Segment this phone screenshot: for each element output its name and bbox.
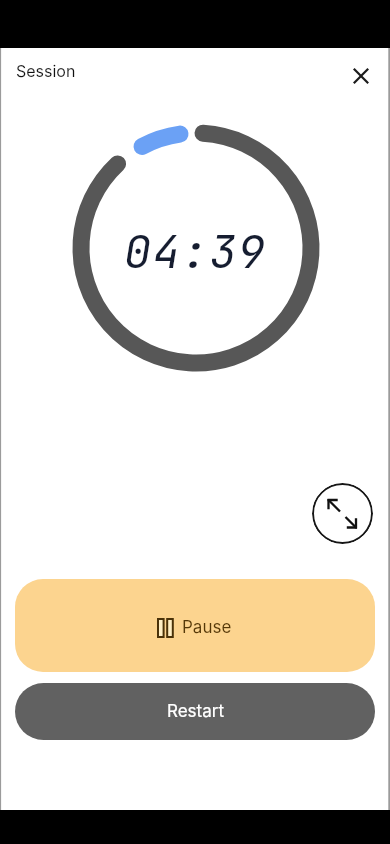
staticText: 04:39 bbox=[124, 222, 267, 281]
button[interactable]: Pause bbox=[15, 579, 375, 672]
button[interactable] bbox=[339, 54, 383, 98]
staticText: Restart bbox=[167, 701, 224, 722]
staticText: Pause bbox=[182, 617, 232, 638]
button[interactable]: Restart bbox=[15, 683, 375, 740]
button[interactable] bbox=[312, 483, 373, 544]
staticText: Session bbox=[16, 61, 76, 80]
